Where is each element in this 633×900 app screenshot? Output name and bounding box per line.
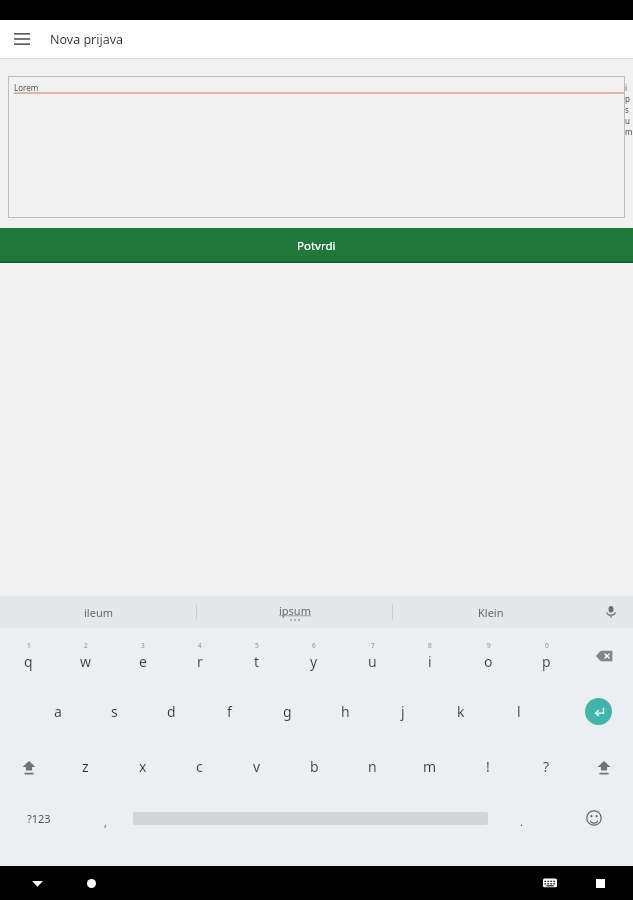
staticText: Lorem — [14, 82, 39, 93]
button[interactable]: Switch keyboard — [535, 868, 565, 898]
staticText: ileum — [84, 605, 113, 620]
button[interactable]: f — [200, 684, 258, 739]
staticText: t — [254, 652, 260, 671]
staticText: w — [80, 652, 92, 671]
staticText: 4 — [198, 641, 202, 650]
button[interactable]: Space — [133, 809, 488, 827]
staticText: . — [520, 814, 523, 829]
staticText: g — [283, 702, 292, 721]
button[interactable]: n — [343, 739, 401, 794]
staticText: a — [54, 702, 62, 721]
button[interactable]: ? — [517, 739, 575, 794]
staticText: ! — [486, 757, 490, 776]
staticText: 9 — [487, 641, 491, 650]
staticText: 2 — [84, 641, 88, 650]
staticText: 3 — [141, 641, 145, 650]
button[interactable]: b — [285, 739, 343, 794]
button[interactable]: 0 — [517, 628, 575, 684]
button[interactable]: ileum — [0, 596, 196, 628]
button[interactable]: m — [401, 739, 459, 794]
staticText: c — [196, 757, 203, 776]
staticText: ?123 — [27, 811, 51, 826]
staticText: ? — [543, 757, 550, 776]
staticText: n — [368, 757, 377, 776]
staticText: u — [368, 652, 377, 671]
staticText: j — [401, 702, 405, 721]
staticText: 6 — [312, 641, 316, 650]
staticText: x — [139, 757, 147, 776]
button[interactable]: Backspace — [575, 628, 633, 684]
staticText: Potvrdi — [297, 238, 336, 254]
staticText: e — [139, 652, 147, 671]
button[interactable]: g — [258, 684, 316, 739]
staticText: h — [341, 702, 350, 721]
button[interactable]: 4 — [171, 628, 228, 684]
button[interactable]: l — [490, 684, 548, 739]
staticText: m — [423, 757, 437, 776]
button[interactable]: Enter — [564, 684, 633, 739]
staticText: k — [457, 702, 465, 721]
staticText: , — [104, 815, 107, 830]
staticText: v — [253, 757, 261, 776]
button[interactable]: 2 — [57, 628, 114, 684]
button[interactable]: ?123 — [0, 794, 77, 842]
staticText: i — [428, 652, 432, 671]
staticText: b — [310, 757, 319, 776]
staticText: 5 — [255, 641, 259, 650]
staticText: r — [197, 652, 203, 671]
button[interactable]: 5 — [228, 628, 285, 684]
staticText: 7 — [371, 641, 375, 650]
button[interactable]: ! — [459, 739, 517, 794]
button[interactable]: Home — [76, 868, 106, 898]
button[interactable]: d — [143, 684, 200, 739]
button[interactable]: a — [29, 684, 86, 739]
button[interactable]: Lorem — [8, 76, 625, 218]
button[interactable]: v — [228, 739, 285, 794]
button[interactable]: Potvrdi — [0, 228, 633, 263]
staticText: z — [82, 757, 89, 776]
button[interactable]: Shift — [0, 739, 57, 794]
button[interactable]: 6 — [285, 628, 343, 684]
button[interactable]: k — [432, 684, 490, 739]
staticText: ipsum — [279, 603, 311, 618]
staticText: q — [24, 652, 33, 671]
button[interactable]: , — [77, 794, 133, 842]
staticText: 1 — [27, 641, 31, 650]
button[interactable]: x — [114, 739, 171, 794]
button[interactable]: Emoji — [555, 794, 633, 842]
button[interactable]: Recent apps — [585, 868, 615, 898]
staticText: Klein — [478, 605, 504, 620]
button[interactable]: h — [316, 684, 374, 739]
button[interactable]: 9 — [459, 628, 517, 684]
button[interactable]: ipsum — [197, 596, 392, 628]
button[interactable]: c — [171, 739, 228, 794]
staticText: s — [111, 702, 118, 721]
button[interactable]: Voice input — [588, 596, 633, 628]
button[interactable]: Klein — [393, 596, 588, 628]
button[interactable]: 8 — [401, 628, 459, 684]
staticText: Nova prijava — [50, 31, 124, 48]
button[interactable]: 1 — [0, 628, 57, 684]
staticText: f — [227, 702, 232, 721]
button[interactable]: Shift — [575, 739, 633, 794]
button[interactable]: Open navigation menu — [8, 25, 36, 53]
button[interactable]: 7 — [343, 628, 401, 684]
staticText: y — [310, 652, 318, 671]
staticText: o — [484, 652, 493, 671]
button[interactable]: z — [57, 739, 114, 794]
button[interactable]: s — [86, 684, 143, 739]
staticText: 0 — [545, 641, 549, 650]
button[interactable]: Hide keyboard — [22, 868, 52, 898]
staticText: 8 — [428, 641, 432, 650]
button[interactable]: 3 — [114, 628, 171, 684]
staticText: d — [167, 702, 176, 721]
staticText: l — [517, 702, 521, 721]
button[interactable]: j — [374, 684, 432, 739]
staticText: p — [542, 652, 551, 671]
